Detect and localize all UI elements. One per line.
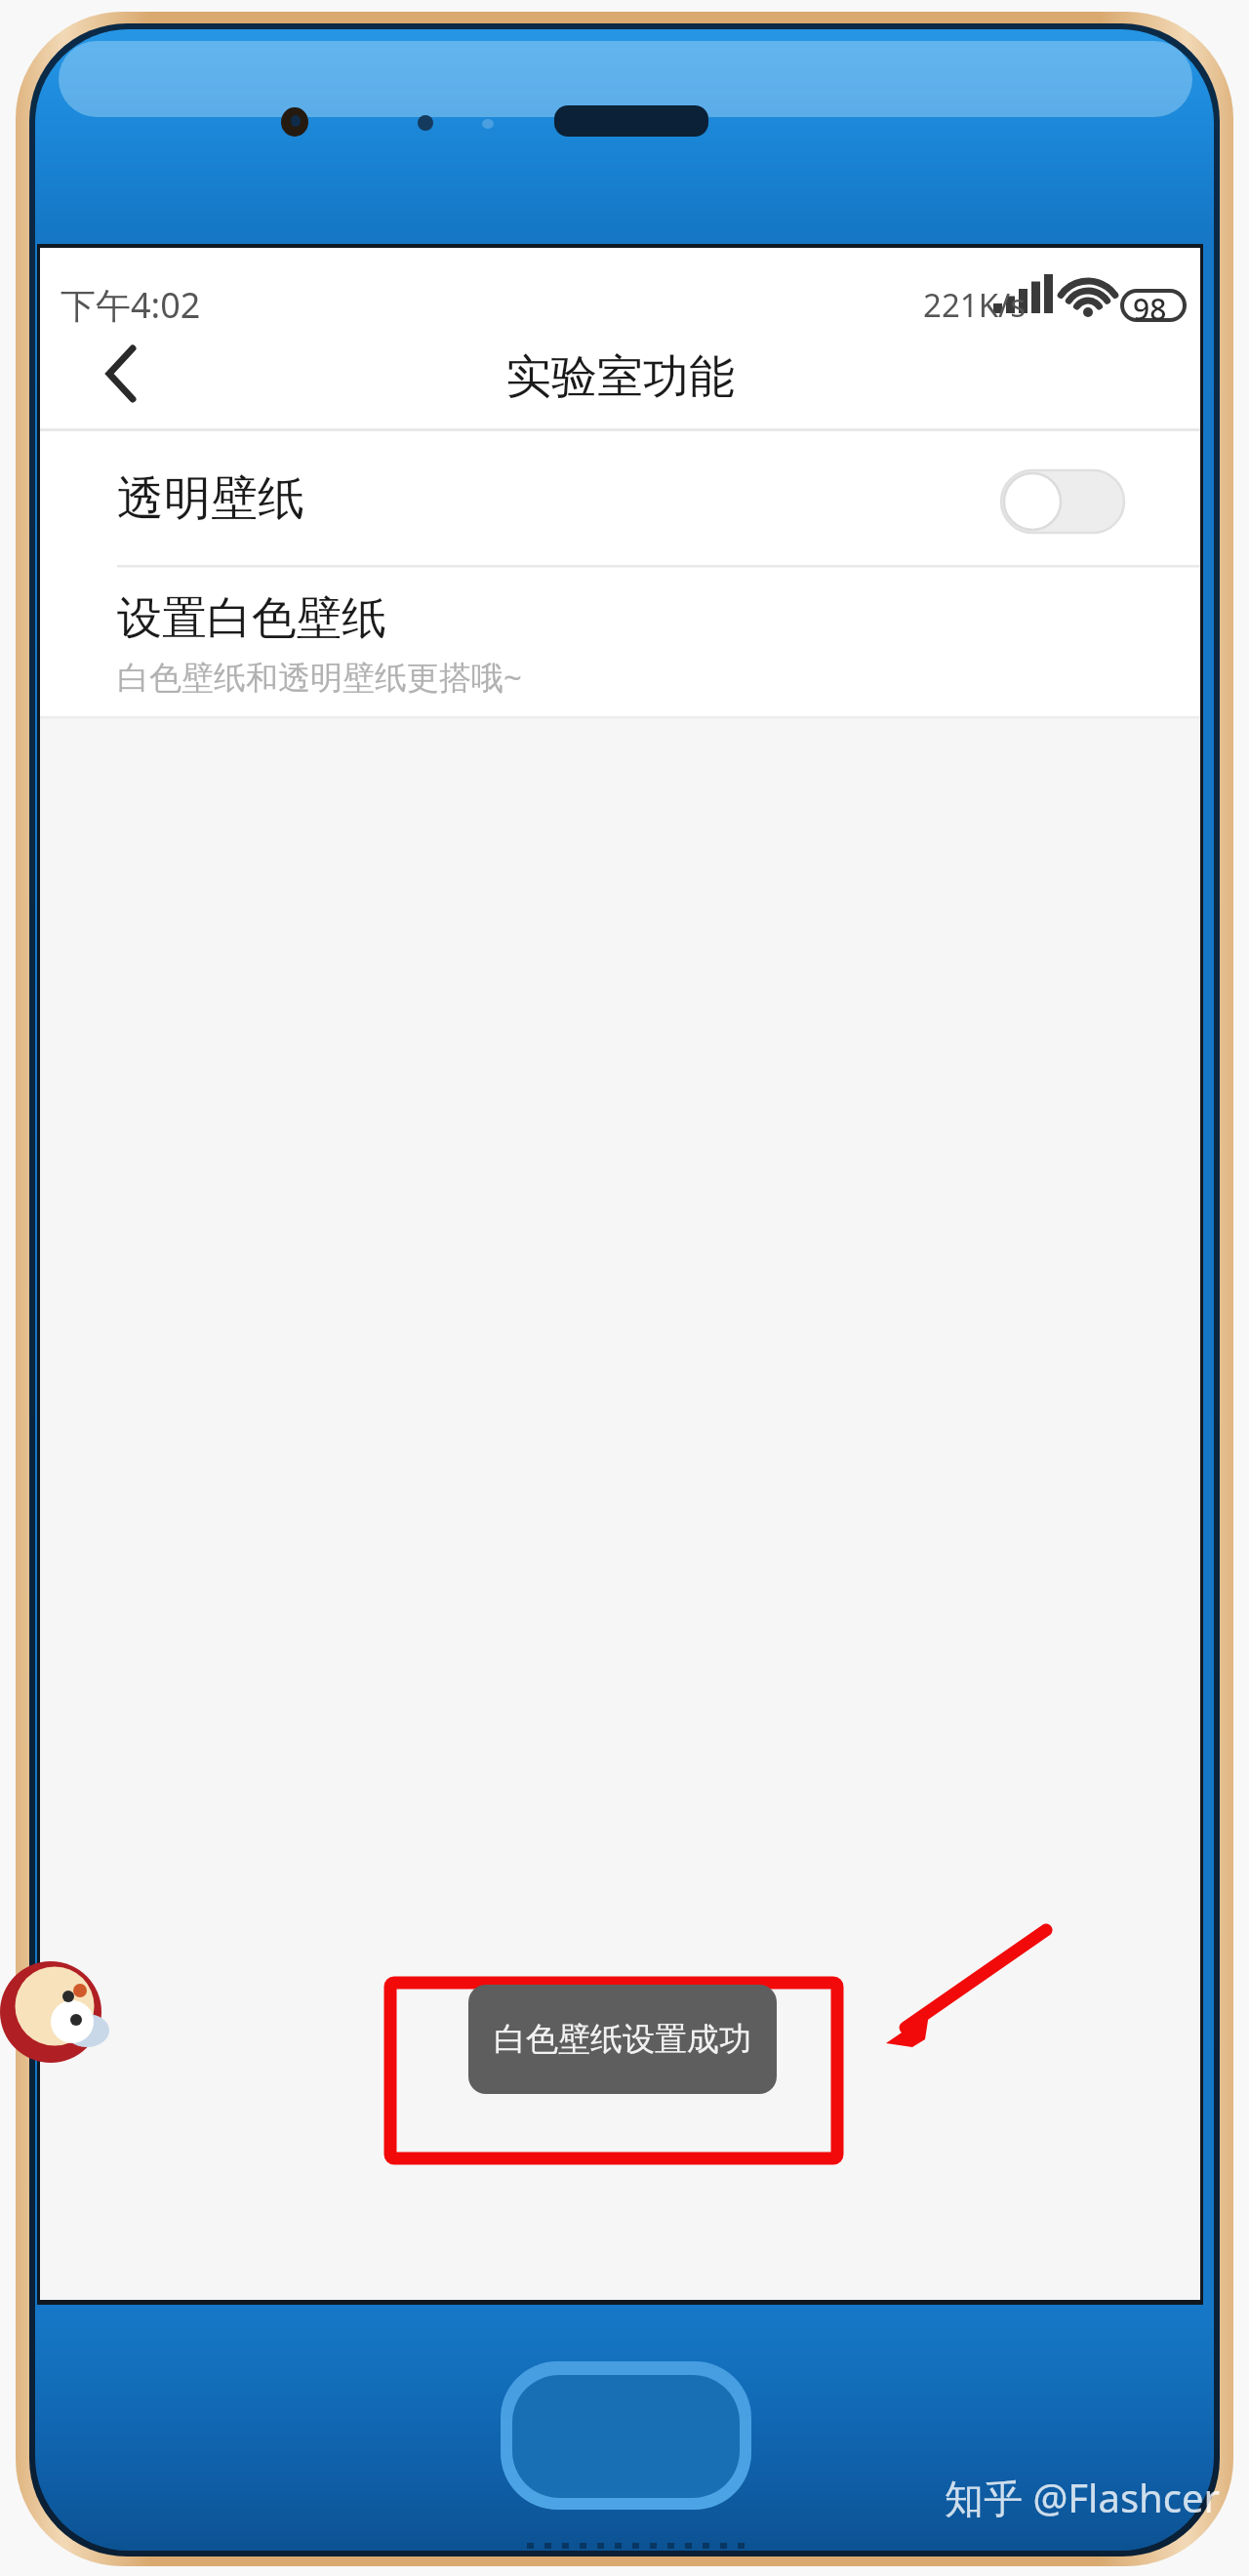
staticText: 221K/s xyxy=(923,283,1027,327)
staticText: 白色壁纸和透明壁纸更搭哦~ xyxy=(117,655,522,699)
staticText: 设置白色壁纸 xyxy=(117,590,386,647)
staticText: 下午4:02 xyxy=(60,281,201,329)
staticText: 白色壁纸设置成功 xyxy=(494,2019,751,2060)
button[interactable]: Back xyxy=(60,322,176,427)
staticText: 知乎 @Flashcer xyxy=(945,2471,1221,2524)
button[interactable]: 透明壁纸 xyxy=(40,431,1200,565)
staticText: 透明壁纸 xyxy=(117,469,304,528)
button[interactable]: 设置白色壁纸 xyxy=(40,568,1200,716)
staticText: 98 xyxy=(1133,289,1167,329)
staticText: 实验室功能 xyxy=(505,348,735,406)
